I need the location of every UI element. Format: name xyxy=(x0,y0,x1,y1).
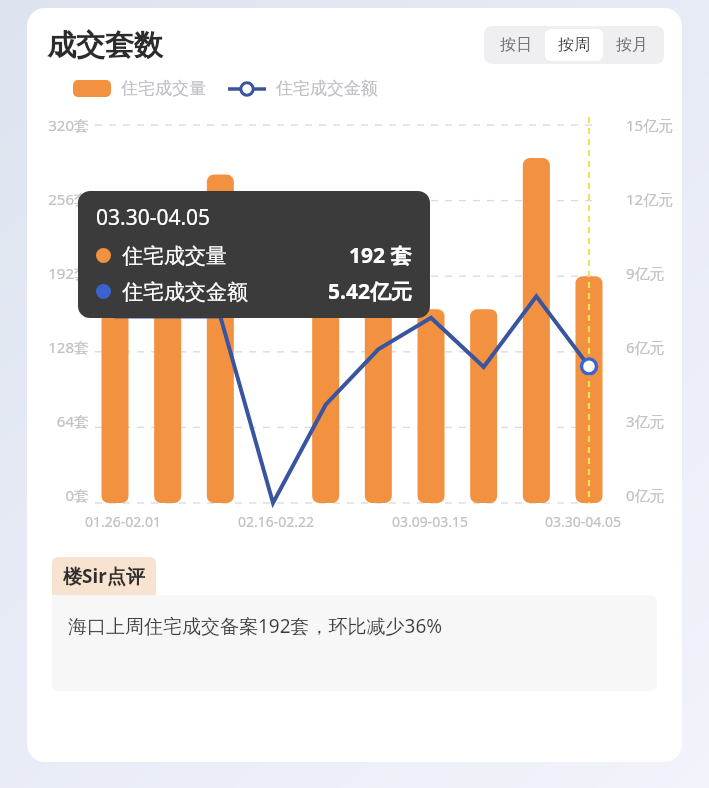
button[interactable]: 按月 xyxy=(603,29,661,61)
staticText: 按日 xyxy=(500,35,532,55)
staticText: 192 套 xyxy=(349,241,412,270)
staticText: 海口上周住宅成交备案192套，环比减少36% xyxy=(68,613,443,639)
button[interactable]: 按周 xyxy=(545,29,603,61)
staticText: 02.16-02.22 xyxy=(238,512,315,531)
staticText: 128套 xyxy=(37,337,89,357)
staticText: 01.26-02.01 xyxy=(85,512,162,531)
staticText: 03.30-04.05 xyxy=(96,203,211,232)
staticText: 6亿元 xyxy=(626,337,665,357)
staticText: 0套 xyxy=(37,485,89,505)
staticText: 12亿元 xyxy=(626,189,674,209)
staticText: 住宅成交金额 xyxy=(122,279,248,305)
staticText: 03.30-04.05 xyxy=(545,512,622,531)
staticText: 03.09-03.15 xyxy=(392,512,469,531)
staticText: 住宅成交量 xyxy=(122,243,227,269)
staticText: 住宅成交金额 xyxy=(276,78,378,99)
staticText: 320套 xyxy=(37,115,89,135)
staticText: 9亿元 xyxy=(626,263,665,283)
staticText: 按周 xyxy=(558,35,590,55)
staticText: 成交套数 xyxy=(47,27,163,64)
staticText: 0亿元 xyxy=(626,485,665,505)
staticText: 3亿元 xyxy=(626,411,665,431)
staticText: 15亿元 xyxy=(626,115,674,135)
button[interactable]: 按日 xyxy=(487,29,545,61)
staticText: 256套 xyxy=(37,189,89,209)
staticText: 按月 xyxy=(616,35,648,55)
staticText: 楼Sir点评 xyxy=(63,563,145,589)
staticText: 192套 xyxy=(37,263,89,283)
staticText: 住宅成交量 xyxy=(121,78,206,99)
staticText: 5.42亿元 xyxy=(328,277,412,306)
staticText: 64套 xyxy=(37,411,89,431)
button[interactable]: 03.30-04.05 xyxy=(78,191,430,318)
